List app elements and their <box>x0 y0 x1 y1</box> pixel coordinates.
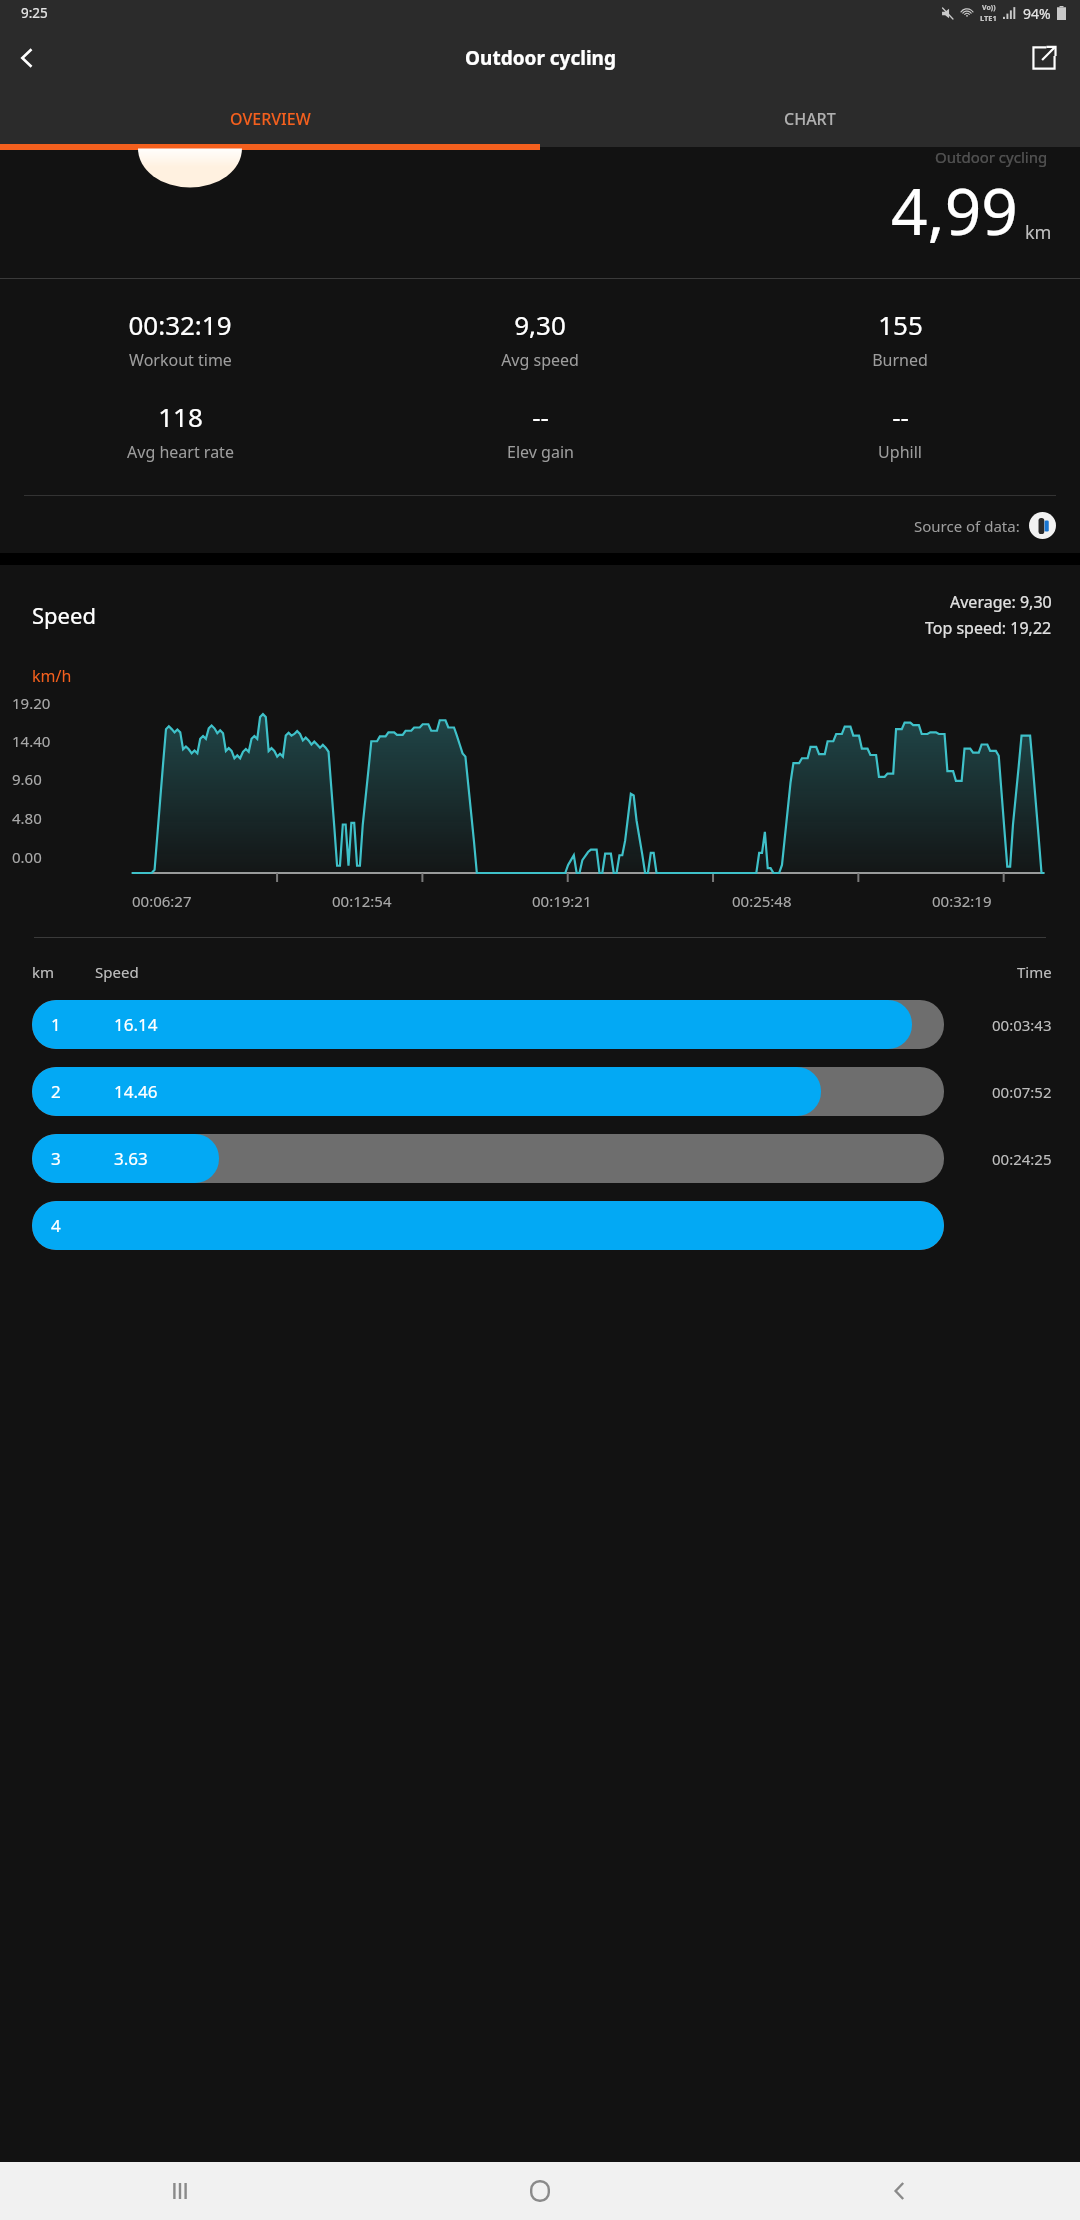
staticText: 00:07:52 <box>992 1082 1052 1102</box>
staticText: km <box>1025 220 1052 245</box>
staticText: 19.20 <box>12 693 51 713</box>
staticText: km <box>32 962 55 982</box>
button[interactable]: Back <box>720 2162 1080 2220</box>
staticText: Avg speed <box>501 349 579 371</box>
button[interactable]: 1 <box>32 1000 1052 1049</box>
staticText: Top speed: 19,22 <box>925 617 1052 639</box>
staticText: 00:24:25 <box>992 1149 1052 1169</box>
staticText: 00:32:19 <box>128 307 232 342</box>
staticText: 00:19:21 <box>532 891 592 911</box>
staticText: 4,99 <box>891 167 1018 254</box>
staticText: 1 <box>51 1013 61 1036</box>
staticText: 00:03:43 <box>992 1015 1052 1035</box>
staticText: km/h <box>32 665 72 687</box>
button[interactable]: 2 <box>32 1067 1052 1116</box>
staticText: 9,30 <box>514 307 566 342</box>
button[interactable]: Recent apps <box>0 2162 360 2220</box>
button[interactable]: 00:32:19 <box>0 307 360 371</box>
button[interactable]: 155 <box>720 307 1080 371</box>
staticText: 9.60 <box>12 769 42 789</box>
staticText: 4.80 <box>12 808 42 828</box>
staticText: 4 <box>51 1214 61 1237</box>
button[interactable]: OVERVIEW <box>0 90 540 147</box>
staticText: CHART <box>784 108 836 130</box>
staticText: -- <box>532 399 549 434</box>
staticText: Outdoor cycling <box>935 147 1048 167</box>
staticText: 9:25 <box>21 4 48 22</box>
staticText: Speed <box>95 962 139 982</box>
staticText: Workout time <box>129 349 232 371</box>
staticText: 155 <box>878 307 923 342</box>
staticText: 00:25:48 <box>732 891 792 911</box>
staticText: Time <box>1017 962 1052 982</box>
staticText: Elev gain <box>507 441 574 463</box>
staticText: Avg heart rate <box>127 441 234 463</box>
staticText: Burned <box>872 349 928 371</box>
staticText: 14.46 <box>114 1080 158 1103</box>
staticText: 118 <box>158 399 203 434</box>
button[interactable]: 3 <box>32 1134 1052 1183</box>
staticText: Source of data: <box>914 516 1020 536</box>
button[interactable]: Data source device <box>1029 512 1056 539</box>
button[interactable]: Back <box>0 30 56 86</box>
staticText: 3.63 <box>114 1147 148 1170</box>
button[interactable]: 4 <box>32 1201 1052 1250</box>
staticText: 16.14 <box>114 1013 158 1036</box>
button[interactable]: Home <box>360 2162 720 2220</box>
staticText: -- <box>892 399 909 434</box>
staticText: 00:12:54 <box>332 891 392 911</box>
button[interactable]: -- <box>720 399 1080 463</box>
staticText: 00:06:27 <box>132 891 192 911</box>
button[interactable]: -- <box>360 399 720 463</box>
staticText: 00:32:19 <box>932 891 992 911</box>
staticText: 3 <box>51 1147 61 1170</box>
button[interactable]: Share <box>1018 32 1070 84</box>
button[interactable]: CHART <box>540 90 1080 147</box>
staticText: Outdoor cycling <box>465 45 616 71</box>
staticText: Vo)) <box>982 3 996 13</box>
staticText: 0.00 <box>12 847 42 867</box>
staticText: LTE1 <box>980 13 997 23</box>
staticText: OVERVIEW <box>230 108 311 130</box>
staticText: 14.40 <box>12 731 51 751</box>
button[interactable]: 118 <box>0 399 360 463</box>
staticText: Average: 9,30 <box>950 591 1052 613</box>
staticText: Speed <box>32 600 96 630</box>
staticText: 2 <box>51 1080 61 1103</box>
staticText: 94% <box>1023 4 1051 23</box>
button[interactable]: 9,30 <box>360 307 720 371</box>
staticText: Uphill <box>878 441 922 463</box>
